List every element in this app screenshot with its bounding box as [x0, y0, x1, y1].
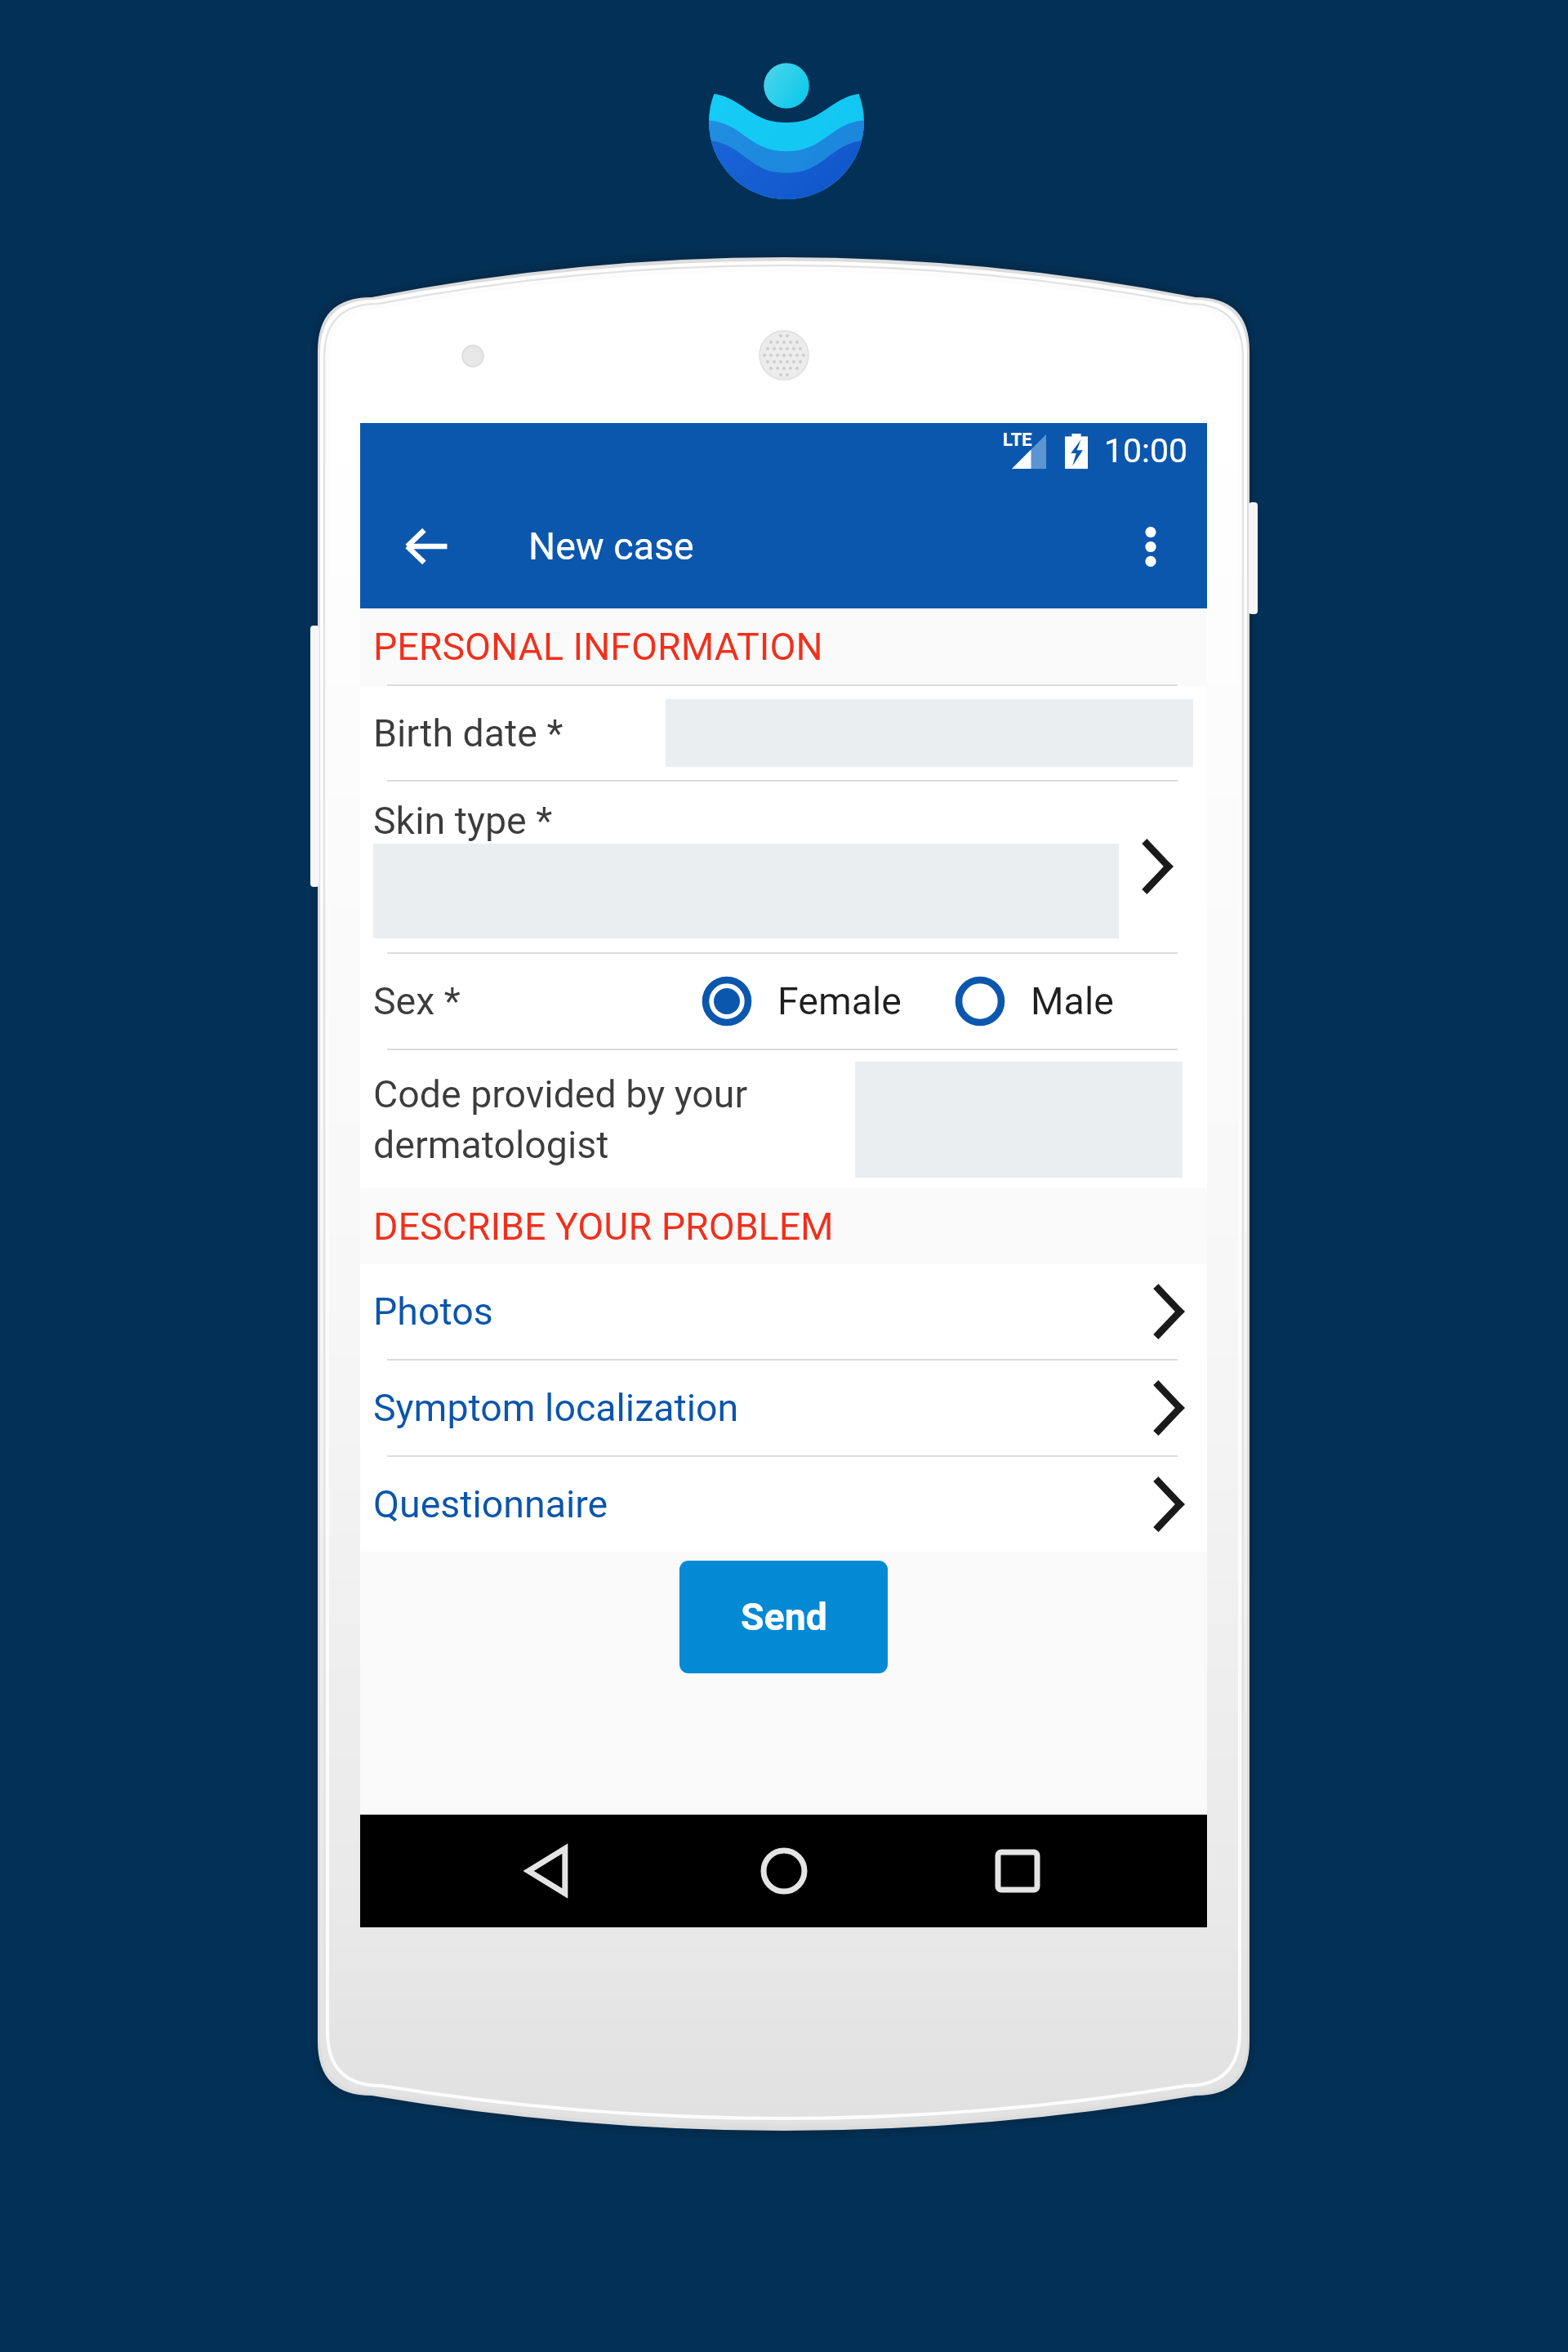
button[interactable]: Skin type * — [360, 782, 1207, 952]
button[interactable]: Photos — [360, 1264, 1207, 1359]
button[interactable]: Code provided by your dermatologist — [360, 1050, 1207, 1188]
button[interactable]: Back — [505, 1826, 590, 1916]
staticText: Female — [777, 979, 902, 1023]
staticText: Code provided by your dermatologist — [373, 1072, 748, 1167]
staticText: Birth date * — [373, 711, 563, 755]
staticText: 10:00 — [1104, 431, 1188, 470]
staticText: LTE — [1003, 430, 1032, 451]
button[interactable]: Birth date * — [360, 686, 1207, 780]
staticText: Sex * — [373, 979, 461, 1023]
staticText: Symptom localization — [373, 1386, 739, 1430]
button[interactable]: More options — [1116, 506, 1185, 587]
button[interactable]: Home — [742, 1826, 826, 1916]
button[interactable]: Female — [701, 975, 902, 1027]
staticText: Questionnaire — [373, 1482, 608, 1526]
button[interactable]: Questionnaire — [360, 1457, 1207, 1552]
button[interactable]: Navigate back — [393, 513, 460, 580]
staticText: PERSONAL INFORMATION — [373, 625, 823, 669]
button[interactable]: Send — [679, 1561, 888, 1673]
staticText: New case — [528, 524, 694, 568]
staticText: Send — [741, 1595, 827, 1639]
staticText: Photos — [373, 1290, 493, 1334]
button[interactable]: Male — [954, 975, 1114, 1027]
button[interactable]: Symptom localization — [360, 1361, 1207, 1455]
staticText: Male — [1031, 979, 1114, 1023]
staticText: Skin type * — [373, 799, 553, 843]
button[interactable]: Recent apps — [975, 1826, 1060, 1916]
staticText: DESCRIBE YOUR PROBLEM — [373, 1205, 834, 1249]
